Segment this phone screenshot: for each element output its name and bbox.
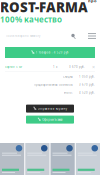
staticText: Хартил 5 мг [5, 65, 22, 69]
staticText: Поиск товара по каталогу [6, 34, 40, 38]
staticText: про [88, 0, 96, 3]
button[interactable]: Поиск [71, 33, 76, 38]
staticText: ROST-FARMA [0, 0, 88, 16]
staticText: Оформить заказ [42, 118, 62, 121]
button[interactable]: 1 товаров - 4 520 руб [0, 47, 100, 58]
staticText: 1 050 руб. [79, 75, 95, 78]
button[interactable]: Удалить [92, 63, 95, 71]
staticText: 3 670 руб. [69, 65, 85, 69]
staticText: Отправить в корзину [38, 107, 67, 110]
staticText: Предварительная стоимость: [34, 83, 73, 86]
button[interactable]: Оформить заказ [26, 116, 74, 124]
staticText: Итого: [64, 91, 73, 94]
button[interactable]: Поиск товара по каталогу [4, 31, 71, 41]
button[interactable]: Товар [76, 143, 100, 175]
staticText: 100% качество [0, 14, 62, 25]
staticText: 1 товаров - 4 520 руб [36, 51, 69, 54]
button[interactable]: Товар [0, 143, 24, 175]
staticText: 4 520 руб. [79, 91, 95, 94]
button[interactable]: Отправить в корзину [26, 105, 74, 113]
staticText: 3 670 руб. [79, 83, 95, 86]
button[interactable]: Товар [25, 143, 49, 175]
button[interactable]: Меню [88, 33, 96, 39]
button[interactable]: Товар [50, 143, 75, 175]
staticText: 1 x [53, 65, 57, 69]
staticText: Скидка: [63, 75, 73, 78]
staticText: × [92, 63, 95, 71]
